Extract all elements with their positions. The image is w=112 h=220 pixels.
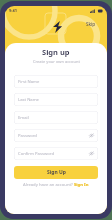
staticText: Last Name	[18, 97, 39, 103]
staticText: Already have an account?	[23, 182, 74, 188]
button[interactable]: Skip	[84, 20, 98, 28]
staticText: First Name	[18, 79, 40, 85]
staticText: Password	[18, 133, 37, 139]
button[interactable]: First Name	[14, 75, 98, 88]
staticText: Sign Up	[47, 169, 66, 176]
button[interactable]: Sign In	[74, 182, 89, 188]
staticText: Sign up	[42, 47, 70, 57]
button[interactable]: Confirm Password	[14, 147, 98, 160]
button[interactable]: Email	[14, 111, 98, 124]
staticText: Sign In	[74, 182, 89, 188]
staticText: Confirm Password	[18, 151, 54, 157]
staticText: 9:41	[9, 8, 17, 13]
staticText: Create your own account	[33, 59, 80, 64]
other: Toggle password visibility	[89, 133, 94, 138]
button[interactable]: Password	[14, 129, 98, 142]
staticText: Email	[18, 115, 29, 121]
button[interactable]: Sign Up	[14, 166, 98, 179]
other: Toggle password visibility	[89, 151, 94, 156]
staticText: Skip	[86, 21, 96, 27]
button[interactable]: Last Name	[14, 93, 98, 106]
